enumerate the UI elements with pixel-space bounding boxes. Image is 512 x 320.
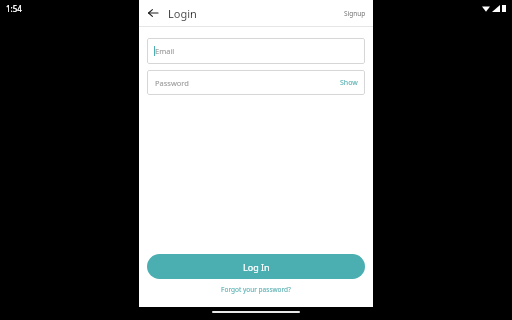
- staticText: Show: [340, 78, 358, 88]
- button[interactable]: Forgot your password?: [216, 283, 296, 296]
- button[interactable]: Back: [144, 4, 162, 22]
- staticText: Signup: [344, 9, 366, 18]
- button[interactable]: Log In: [147, 254, 365, 279]
- staticText: Forgot your password?: [221, 285, 291, 294]
- button[interactable]: Email: [147, 38, 365, 64]
- staticText: Email: [155, 46, 175, 56]
- staticText: Password: [155, 78, 189, 88]
- staticText: Log In: [243, 261, 270, 273]
- staticText: Login: [168, 6, 197, 21]
- button[interactable]: Signup: [340, 5, 370, 22]
- staticText: 1:54: [6, 3, 22, 14]
- button[interactable]: Password: [147, 70, 365, 95]
- button[interactable]: Show: [336, 74, 362, 92]
